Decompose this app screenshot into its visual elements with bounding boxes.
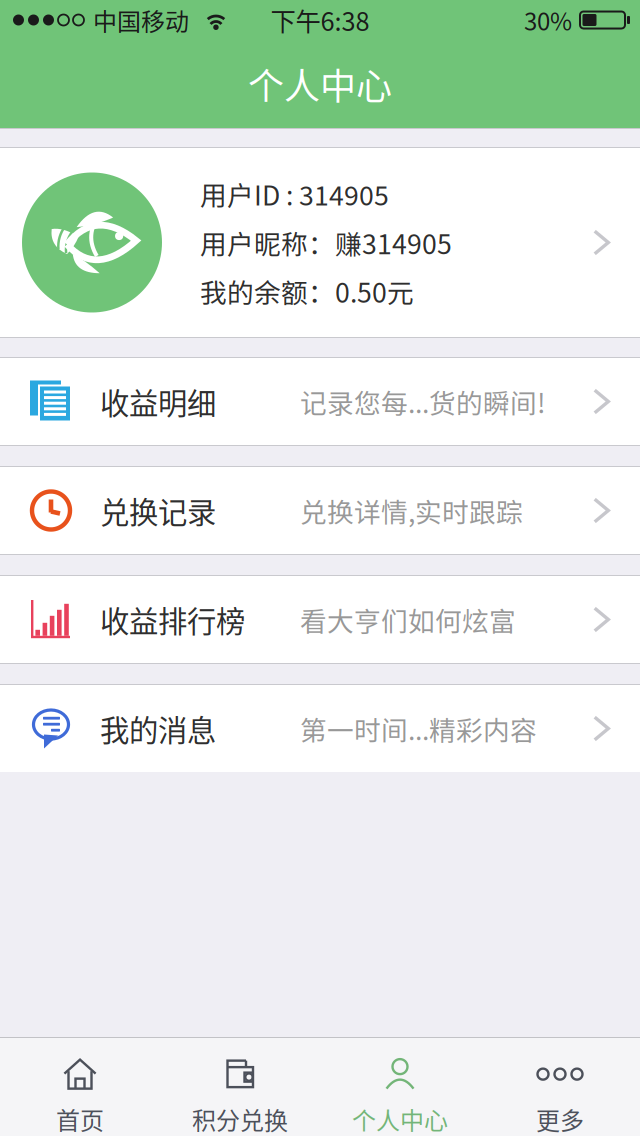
staticText: 更多	[536, 1102, 584, 1136]
button[interactable]: 用户ID : 314905	[0, 148, 640, 337]
staticText: 中国移动	[93, 3, 189, 37]
staticText: 用户昵称：赚314905	[200, 223, 452, 262]
staticText: 第一时间...精彩内容	[300, 709, 537, 748]
staticText: 收益排行榜	[100, 598, 245, 641]
staticText: 我的消息	[100, 707, 216, 750]
staticText: 个人中心	[352, 1102, 448, 1136]
button[interactable]: 我的消息	[0, 685, 640, 772]
button[interactable]: 积分兑换	[160, 1038, 320, 1136]
staticText: 30%	[524, 3, 572, 37]
button[interactable]: 个人中心	[320, 1038, 480, 1136]
button[interactable]: 收益明细	[0, 358, 640, 445]
staticText: 记录您每...货的瞬间!	[300, 382, 546, 421]
button[interactable]: 更多	[480, 1038, 640, 1136]
staticText: 个人中心	[248, 58, 392, 110]
staticText: 兑换详情,实时跟踪	[300, 491, 523, 530]
staticText: 用户ID : 314905	[200, 175, 389, 213]
staticText: 兑换记录	[100, 489, 216, 532]
staticText: 收益明细	[100, 380, 216, 423]
button[interactable]: 兑换记录	[0, 467, 640, 554]
staticText: 看大亨们如何炫富	[300, 600, 516, 639]
staticText: 下午6:38	[270, 2, 369, 38]
staticText: 积分兑换	[192, 1102, 288, 1136]
button[interactable]: 收益排行榜	[0, 576, 640, 663]
staticText: 首页	[56, 1102, 104, 1136]
staticText: 我的余额：0.50元	[200, 272, 414, 310]
button[interactable]: 首页	[0, 1038, 160, 1136]
